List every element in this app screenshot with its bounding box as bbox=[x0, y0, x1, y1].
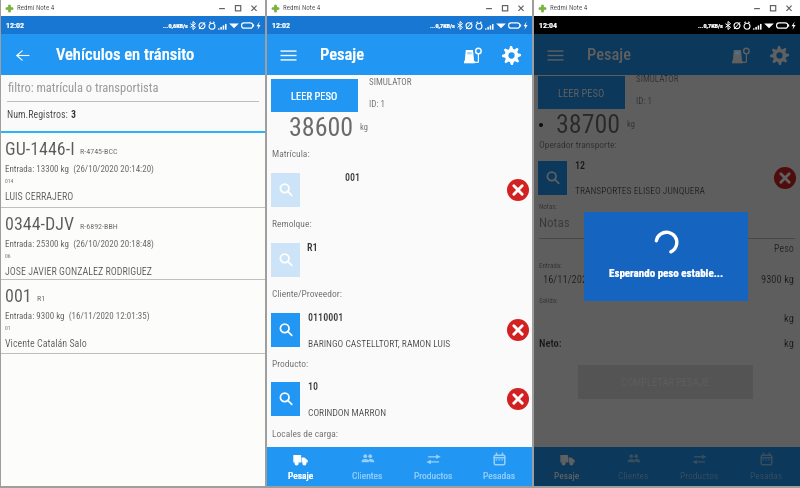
staticText: Pesadas bbox=[750, 470, 783, 481]
staticText: 0344-DJV bbox=[5, 213, 75, 234]
staticText: Pesadas bbox=[483, 470, 516, 481]
staticText: 01 bbox=[5, 325, 11, 332]
button[interactable]: Clientes bbox=[334, 447, 400, 486]
staticText: Entrada: bbox=[539, 262, 562, 270]
staticText: Notas bbox=[539, 215, 570, 230]
staticText: SIMULATOR bbox=[369, 77, 412, 88]
staticText: 9300 kg bbox=[761, 273, 794, 285]
button[interactable]: Buscar bbox=[271, 313, 300, 347]
staticText: Entrada: 25300 kg (26/10/2020 20:18:48) bbox=[5, 239, 154, 250]
staticText: LEER PESO bbox=[291, 90, 338, 102]
staticText: 3 bbox=[71, 109, 77, 121]
button[interactable]: Báscula bbox=[726, 40, 756, 70]
button[interactable]: Borrar bbox=[507, 319, 529, 341]
staticText: Locales de carga: bbox=[272, 428, 338, 439]
button[interactable]: Ajustes bbox=[764, 40, 794, 70]
staticText: ID: 1 bbox=[369, 99, 385, 110]
button[interactable]: GU-1446-I bbox=[1, 133, 265, 207]
button[interactable]: Pesadas bbox=[466, 447, 532, 486]
staticText: Pesaje bbox=[554, 470, 580, 481]
button[interactable]: Productos bbox=[400, 447, 466, 486]
staticText: 001 bbox=[5, 285, 32, 306]
button[interactable]: 0344-DJV bbox=[1, 208, 265, 279]
staticText: GU-1446-I bbox=[5, 138, 75, 159]
button[interactable]: Pesaje bbox=[534, 447, 600, 486]
staticText: Esperando peso estable... bbox=[609, 267, 724, 280]
staticText: 12 bbox=[575, 160, 586, 172]
button[interactable]: Buscar bbox=[538, 161, 567, 195]
staticText: LUIS CERRAJERO bbox=[5, 191, 74, 203]
button[interactable]: Borrar bbox=[507, 179, 529, 201]
staticText: Pesaje bbox=[587, 45, 632, 64]
staticText: R-6892-BBH bbox=[80, 222, 118, 231]
staticText: Cliente/Proveedor: bbox=[272, 288, 342, 299]
button[interactable]: Báscula bbox=[458, 40, 488, 70]
button[interactable]: Buscar bbox=[271, 382, 300, 416]
staticText: 12:02 bbox=[272, 21, 291, 30]
button[interactable]: Buscar bbox=[271, 173, 300, 207]
staticText: kg bbox=[627, 119, 635, 129]
button[interactable]: Menú bbox=[274, 41, 302, 69]
button[interactable]: Pesaje bbox=[267, 447, 334, 486]
staticText: ...0,7KB/s bbox=[698, 22, 723, 29]
staticText: Pesaje bbox=[320, 45, 365, 64]
staticText: Notas: bbox=[539, 203, 558, 211]
button[interactable]: Menú bbox=[541, 41, 569, 69]
staticText: 001 bbox=[345, 172, 361, 184]
staticText: SIMULATOR bbox=[636, 74, 679, 85]
staticText: kg bbox=[784, 312, 794, 324]
staticText: 12:04 bbox=[539, 21, 558, 30]
staticText: BARINGO CASTELLTORT, RAMON LUIS bbox=[308, 338, 451, 349]
staticText: Producto: bbox=[272, 358, 309, 369]
staticText: Redmi Note 4 bbox=[283, 4, 321, 12]
staticText: 12:02 bbox=[6, 21, 25, 30]
staticText: Clientes bbox=[352, 470, 383, 481]
button[interactable]: 001 bbox=[1, 280, 265, 353]
staticText: 014 bbox=[5, 178, 14, 185]
button[interactable]: LEER PESO bbox=[271, 79, 358, 112]
staticText: ...0,7KB/s bbox=[430, 22, 455, 29]
staticText: Vehículos en tránsito bbox=[56, 45, 195, 64]
staticText: Vicente Catalán Salo bbox=[5, 338, 87, 350]
staticText: R1 bbox=[37, 294, 46, 303]
staticText: Neto: bbox=[539, 337, 562, 349]
staticText: 0110001 bbox=[308, 312, 344, 324]
staticText: LEER PESO bbox=[558, 87, 605, 99]
staticText: ...0,6KB/s bbox=[163, 22, 188, 29]
staticText: Matrícula: bbox=[272, 148, 310, 159]
staticText: Salida: bbox=[539, 297, 558, 305]
staticText: Remolque: bbox=[272, 218, 312, 229]
staticText: Entrada: 13300 kg (26/10/2020 20:14:20) bbox=[5, 164, 154, 175]
staticText: TRANSPORTES ELISEO JUNQUERA bbox=[575, 185, 705, 196]
staticText: 10 bbox=[308, 381, 319, 393]
staticText: Redmi Note 4 bbox=[17, 4, 55, 12]
staticText: Operador transporte: bbox=[539, 139, 617, 150]
button[interactable]: Borrar bbox=[507, 388, 529, 410]
staticText: kg bbox=[784, 337, 794, 349]
staticText: Productos bbox=[414, 470, 453, 481]
button[interactable]: Clientes bbox=[600, 447, 666, 486]
staticText: Productos bbox=[680, 470, 719, 481]
staticText: 06 bbox=[5, 253, 11, 260]
staticText: JOSE JAVIER GONZALEZ RODRIGUEZ bbox=[5, 266, 153, 278]
button[interactable]: Pesadas bbox=[733, 447, 800, 486]
staticText: R-4745-BCC bbox=[80, 147, 118, 156]
staticText: Peso bbox=[774, 243, 794, 255]
staticText: Num.Registros: bbox=[7, 109, 71, 121]
button[interactable]: Productos bbox=[666, 447, 733, 486]
button[interactable]: Borrar bbox=[774, 167, 796, 189]
staticText: Clientes bbox=[618, 470, 649, 481]
staticText: 38700 bbox=[556, 109, 621, 139]
staticText: Entrada: 9300 kg (16/11/2020 12:01:35) bbox=[5, 311, 150, 322]
button[interactable]: LEER PESO bbox=[538, 76, 625, 109]
button[interactable]: Atrás bbox=[8, 40, 38, 70]
button[interactable]: Buscar bbox=[271, 243, 300, 277]
staticText: R1 bbox=[307, 242, 318, 254]
staticText: CORINDON MARRON bbox=[308, 407, 387, 418]
staticText: Pesaje bbox=[288, 470, 314, 481]
staticText: 38600 bbox=[289, 112, 354, 142]
button[interactable]: Ajustes bbox=[496, 40, 526, 70]
